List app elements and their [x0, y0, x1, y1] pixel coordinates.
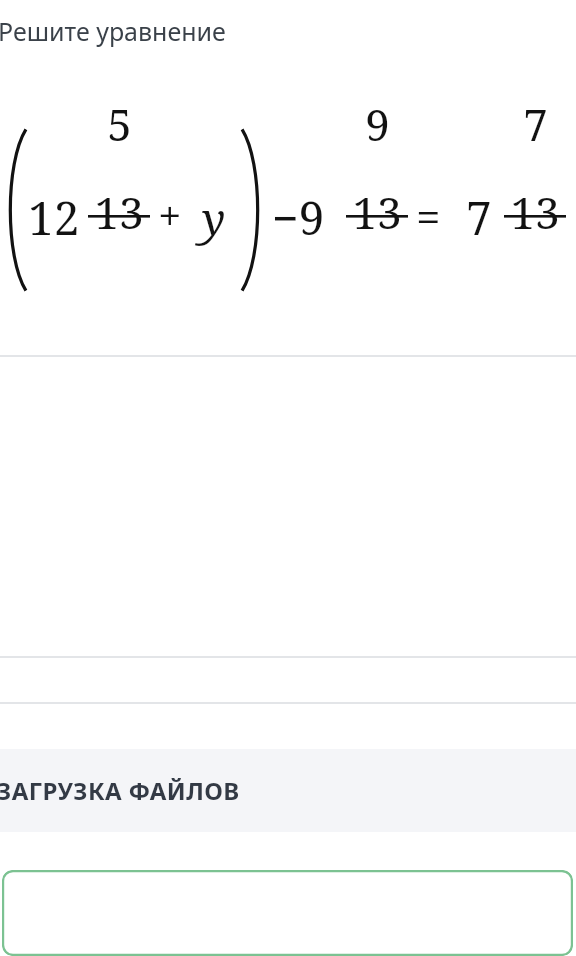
staticText: 7: [466, 186, 492, 249]
staticText: y: [202, 188, 226, 248]
staticText: 5: [107, 94, 132, 154]
staticText: 12: [28, 186, 80, 249]
staticText: 13: [352, 182, 402, 242]
staticText: ЗАГРУЗКА ФАЙЛОВ: [0, 774, 240, 807]
staticText: 13: [510, 182, 560, 242]
staticText: 7: [523, 94, 548, 154]
staticText: 9: [365, 94, 390, 154]
staticText: =: [416, 186, 441, 246]
staticText: Решите уравнение: [0, 14, 226, 48]
staticText: +: [158, 186, 182, 243]
button[interactable]: [2, 870, 573, 956]
staticText: 13: [94, 182, 144, 242]
button[interactable]: ЗАГРУЗКА ФАЙЛОВ: [0, 749, 576, 832]
staticText: −9: [272, 186, 325, 249]
